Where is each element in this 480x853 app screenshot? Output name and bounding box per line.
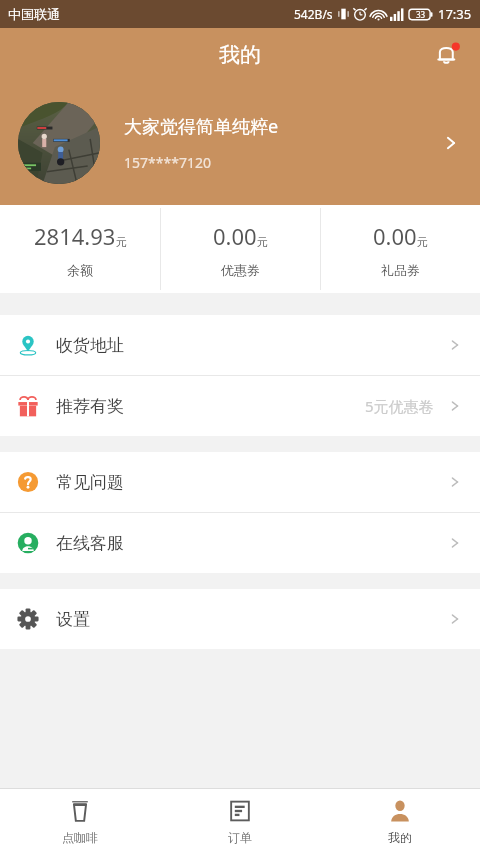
button[interactable]: Notifications	[430, 37, 466, 73]
staticText: 542B/s	[294, 6, 333, 22]
staticText: 点咖啡	[62, 830, 98, 845]
staticText: 5元优惠卷	[365, 396, 434, 416]
button[interactable]: 订单	[160, 789, 320, 853]
staticText: 元	[116, 235, 127, 249]
staticText: 设置	[56, 609, 90, 630]
button[interactable]: 我的	[320, 789, 480, 853]
staticText: 中国联通	[8, 6, 60, 22]
button[interactable]: 推荐有奖	[0, 376, 480, 436]
button[interactable]: 常见问题	[0, 452, 480, 512]
staticText: 0.00	[213, 221, 257, 251]
staticText: 常见问题	[56, 472, 124, 493]
button[interactable]: 2814.93	[0, 205, 160, 293]
staticText: 元	[257, 235, 268, 249]
staticText: 在线客服	[56, 533, 124, 554]
button[interactable]: 大家觉得简单纯粹e	[0, 81, 480, 205]
button[interactable]: 在线客服	[0, 513, 480, 573]
staticText: 推荐有奖	[56, 396, 124, 417]
button[interactable]: 点咖啡	[0, 789, 160, 853]
button[interactable]: 0.00	[161, 205, 320, 293]
staticText: 33	[416, 9, 426, 20]
staticText: 2814.93	[34, 221, 116, 251]
button[interactable]: 0.00	[321, 205, 480, 293]
staticText: 157****7120	[124, 153, 211, 172]
button[interactable]: 设置	[0, 589, 480, 649]
button[interactable]: 收货地址	[0, 315, 480, 375]
staticText: 我的	[388, 830, 412, 845]
staticText: 订单	[228, 830, 252, 845]
staticText: 收货地址	[56, 335, 124, 356]
staticText: 余额	[67, 262, 93, 278]
staticText: 优惠券	[221, 262, 260, 278]
staticText: 我的	[219, 42, 261, 68]
staticText: 大家觉得简单纯粹e	[124, 114, 279, 139]
staticText: 0.00	[373, 221, 417, 251]
staticText: 元	[417, 235, 428, 249]
staticText: 17:35	[438, 5, 472, 23]
staticText: 礼品券	[381, 262, 420, 278]
